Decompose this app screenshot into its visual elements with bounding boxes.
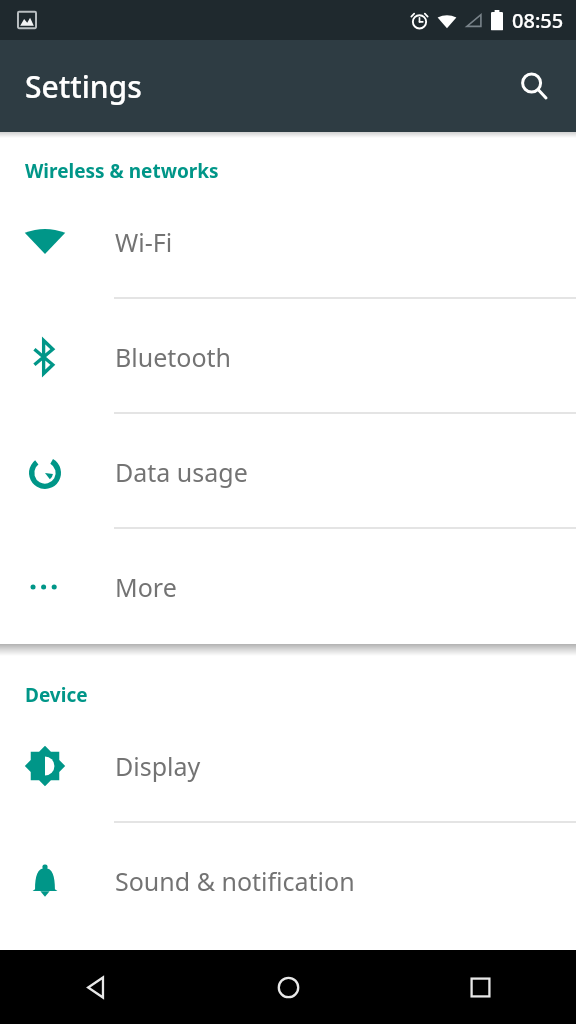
button[interactable]: Sound & notification [0,823,576,938]
button[interactable]: Display [0,708,576,823]
button[interactable]: Data usage [0,414,576,529]
staticText: Wireless & networks [25,158,219,184]
button[interactable]: Recents [384,950,576,1024]
staticText: 08:55 [512,7,564,34]
staticText: Settings [25,66,142,107]
staticText: Sound & notification [115,864,355,898]
staticText: Bluetooth [115,340,232,374]
staticText: Display [115,749,201,783]
button[interactable]: Wi-Fi [0,184,576,299]
staticText: More [115,570,177,604]
button[interactable]: Bluetooth [0,299,576,414]
staticText: Device [25,682,88,708]
button[interactable]: Home [192,950,384,1024]
staticText: Wi-Fi [115,225,173,259]
staticText: Data usage [115,455,248,489]
button[interactable]: More [0,529,576,644]
button[interactable]: Search [506,58,562,114]
button[interactable]: Back [0,950,192,1024]
